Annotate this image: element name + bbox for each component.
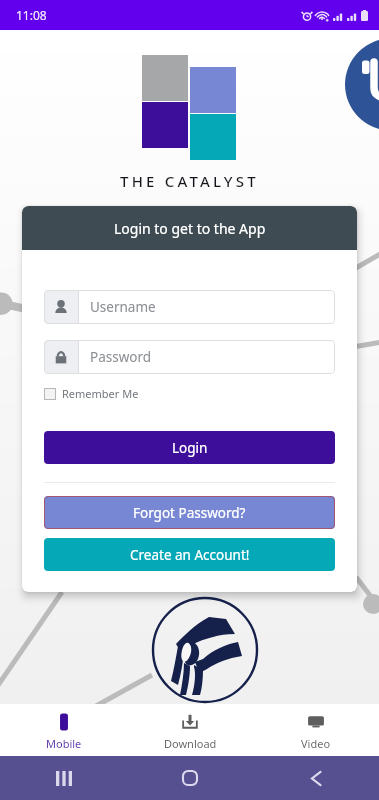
button[interactable]: Login (44, 431, 335, 464)
staticText: Login (172, 439, 208, 457)
button[interactable]: Back (253, 756, 379, 800)
staticText: Remember Me (62, 386, 139, 401)
staticText: Download (164, 736, 217, 751)
button[interactable]: Download (127, 710, 253, 751)
staticText: THE CATALYST (120, 171, 259, 191)
button[interactable]: Password (44, 340, 335, 374)
staticText: Mobile (46, 736, 82, 751)
staticText: Login to get to the App (114, 219, 266, 238)
button[interactable]: Mobile (0, 710, 127, 751)
button[interactable]: Username (44, 290, 335, 324)
button[interactable]: Forgot Password? (44, 496, 335, 529)
staticText: 11:08 (16, 7, 47, 23)
button[interactable]: Home (127, 756, 253, 800)
button[interactable]: Recent apps (0, 756, 127, 800)
staticText: Forgot Password? (133, 504, 246, 522)
staticText: Password (90, 348, 152, 366)
button[interactable]: Create an Account! (44, 538, 335, 571)
staticText: Video (301, 736, 331, 751)
staticText: Create an Account! (130, 546, 250, 564)
staticText: Username (90, 298, 156, 316)
button[interactable]: Video (253, 710, 379, 751)
button[interactable]: Remember Me (44, 381, 139, 406)
